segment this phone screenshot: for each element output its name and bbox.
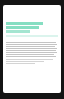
button[interactable] [6,22,58,33]
button[interactable] [6,42,58,64]
